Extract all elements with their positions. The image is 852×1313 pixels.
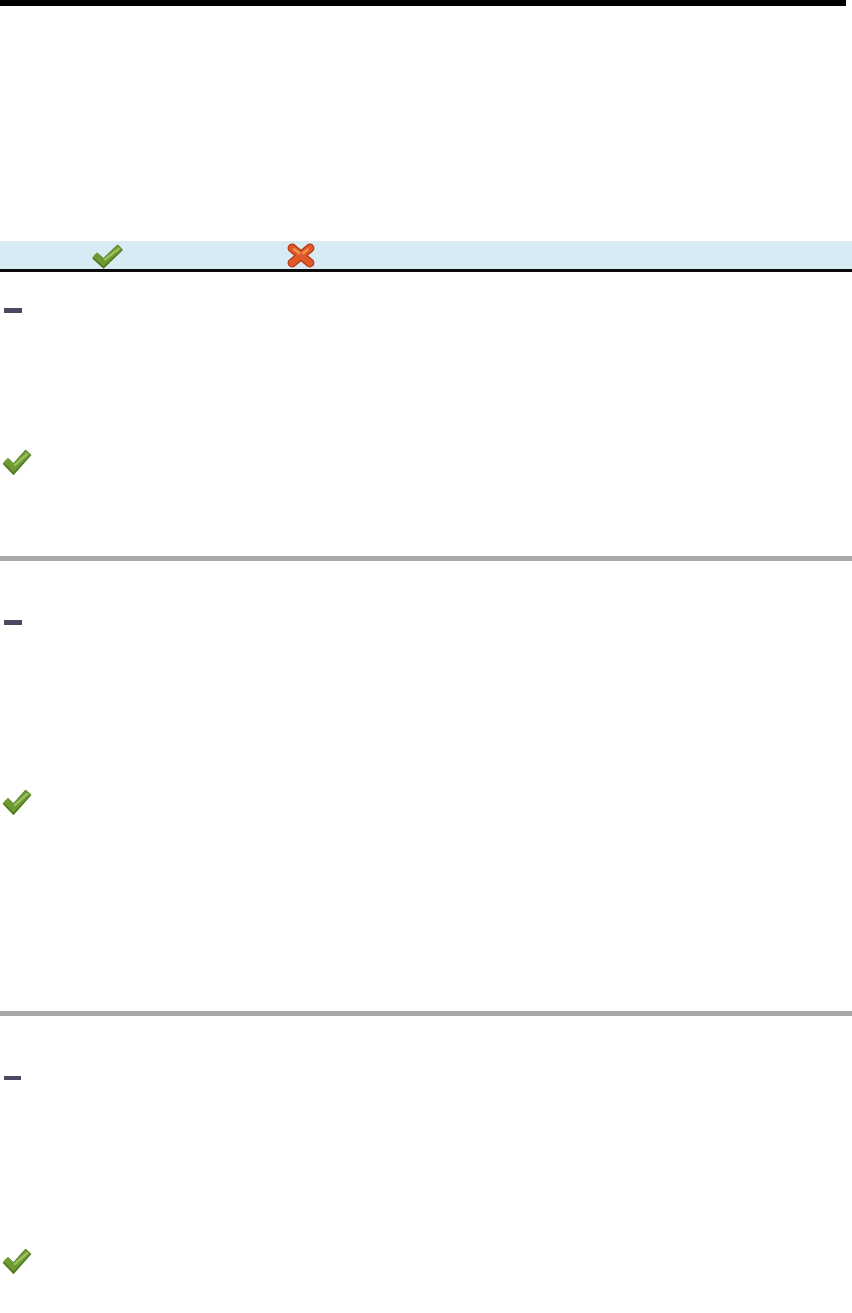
button[interactable]: Supported (4, 449, 30, 473)
button[interactable]: Supported (4, 1248, 30, 1272)
button[interactable] (0, 241, 852, 269)
button[interactable]: Supported (4, 789, 30, 813)
button[interactable]: Not supported (287, 243, 315, 268)
button[interactable]: Supported (93, 244, 122, 267)
